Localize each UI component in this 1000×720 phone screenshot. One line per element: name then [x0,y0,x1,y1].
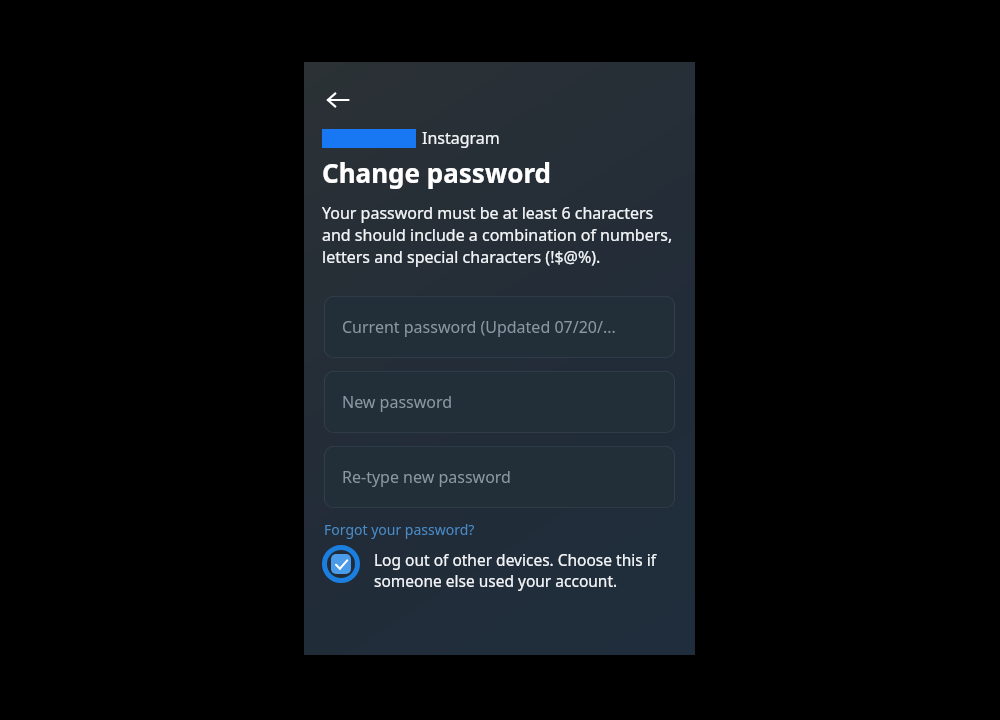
button[interactable]: New password [324,371,675,433]
staticText: Current password (Updated 07/20/... [342,316,616,338]
button[interactable]: Re-type new password [324,446,675,508]
staticText: Re-type new password [342,466,511,488]
button[interactable]: Current password (Updated 07/20/... [324,296,675,358]
staticText: Log out of other devices. Choose this if… [374,549,679,592]
button[interactable]: Forgot your password? [324,518,475,541]
button[interactable]: Log out of other devices. Choose this if… [304,549,695,592]
staticText: Change password [322,155,551,190]
staticText: New password [342,391,453,413]
button[interactable]: Back [318,80,358,120]
staticText: Forgot your password? [324,520,475,539]
staticText: Instagram [422,127,500,149]
staticText: Your password must be at least 6 charact… [322,202,675,268]
